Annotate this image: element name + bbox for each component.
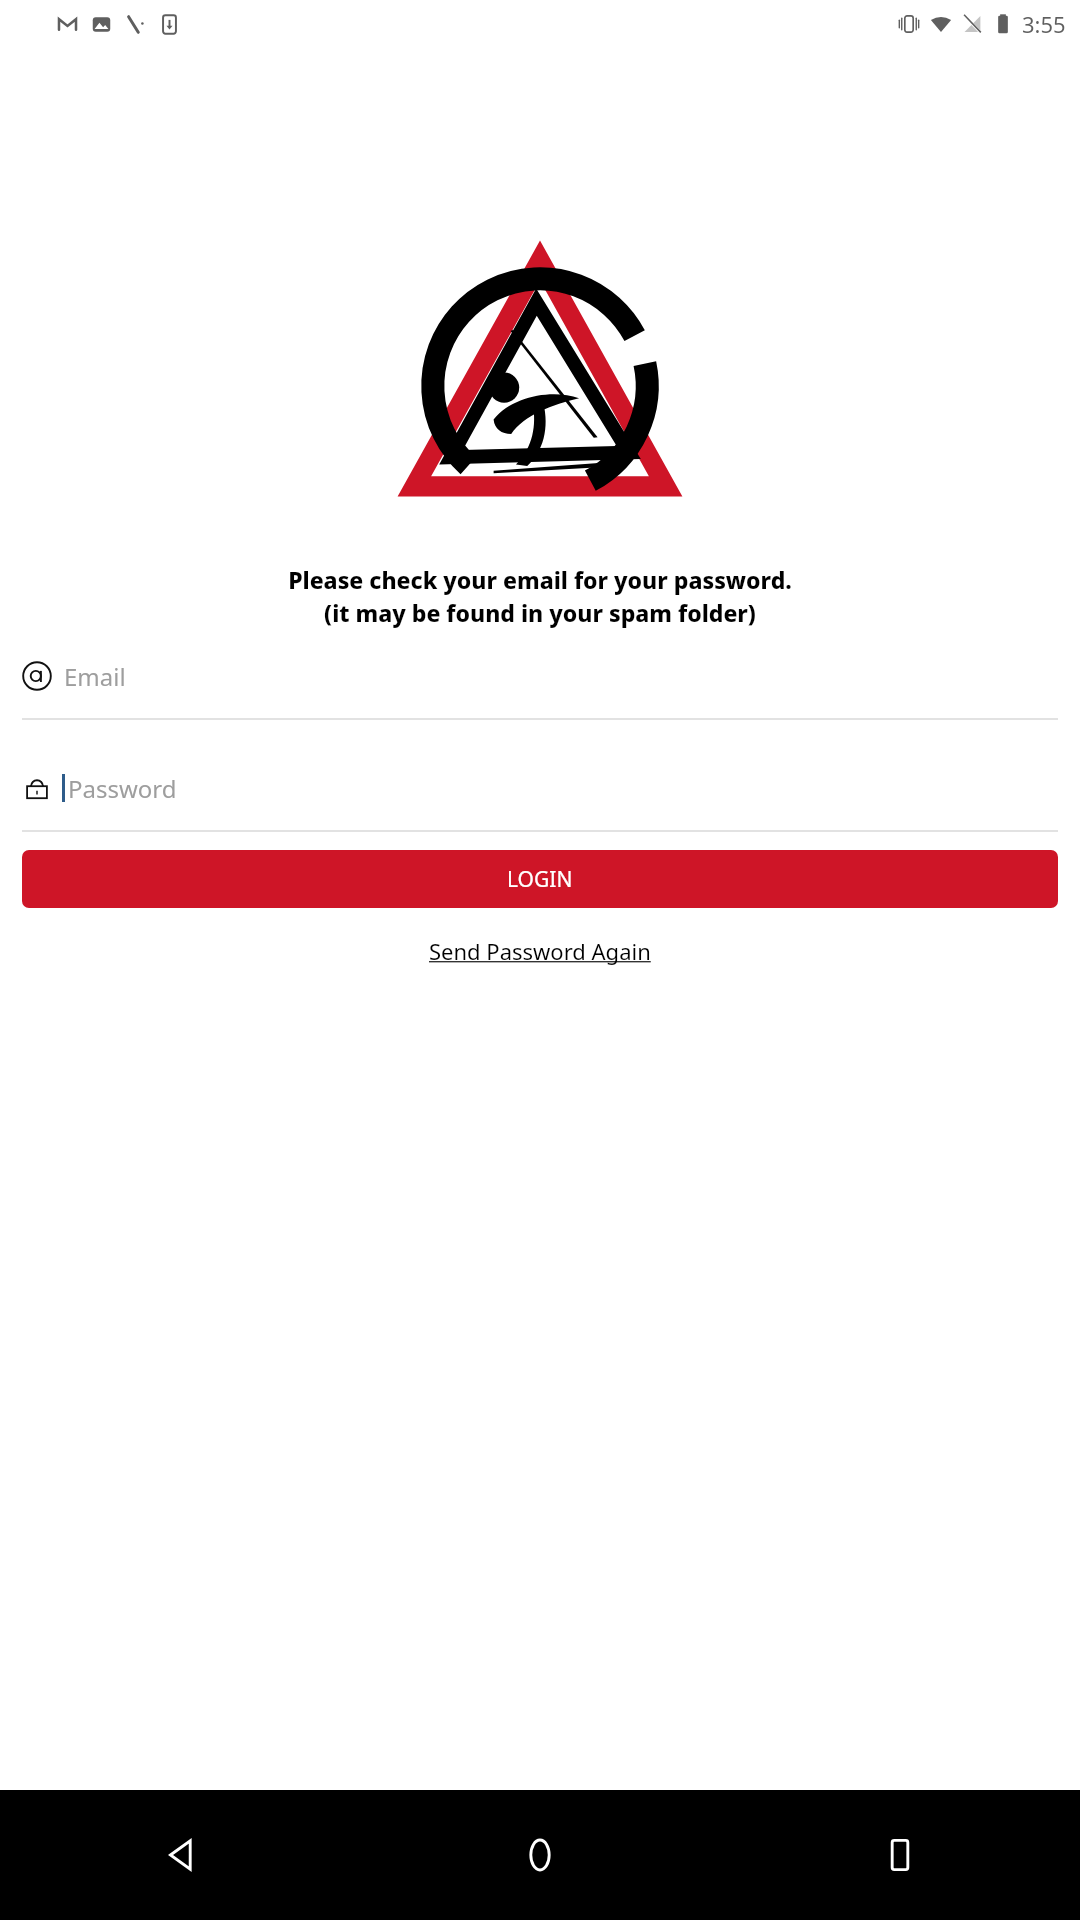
button[interactable]: Password	[22, 766, 1058, 832]
staticText: Please check your email for your passwor…	[14, 564, 1066, 595]
staticText: Send Password Again	[429, 936, 651, 966]
button[interactable]: Home	[503, 1818, 577, 1892]
staticText: (it may be found in your spam folder)	[14, 597, 1066, 628]
staticText: Password	[68, 772, 177, 805]
staticText: Email	[64, 660, 126, 693]
button[interactable]: LOGIN	[22, 850, 1058, 908]
staticText: LOGIN	[507, 865, 573, 894]
button[interactable]: Recent apps	[863, 1818, 937, 1892]
button[interactable]: Send Password Again	[417, 930, 663, 972]
button[interactable]: Email	[22, 654, 1058, 720]
staticText: 3:55	[1022, 9, 1066, 39]
button[interactable]: Back	[143, 1818, 217, 1892]
